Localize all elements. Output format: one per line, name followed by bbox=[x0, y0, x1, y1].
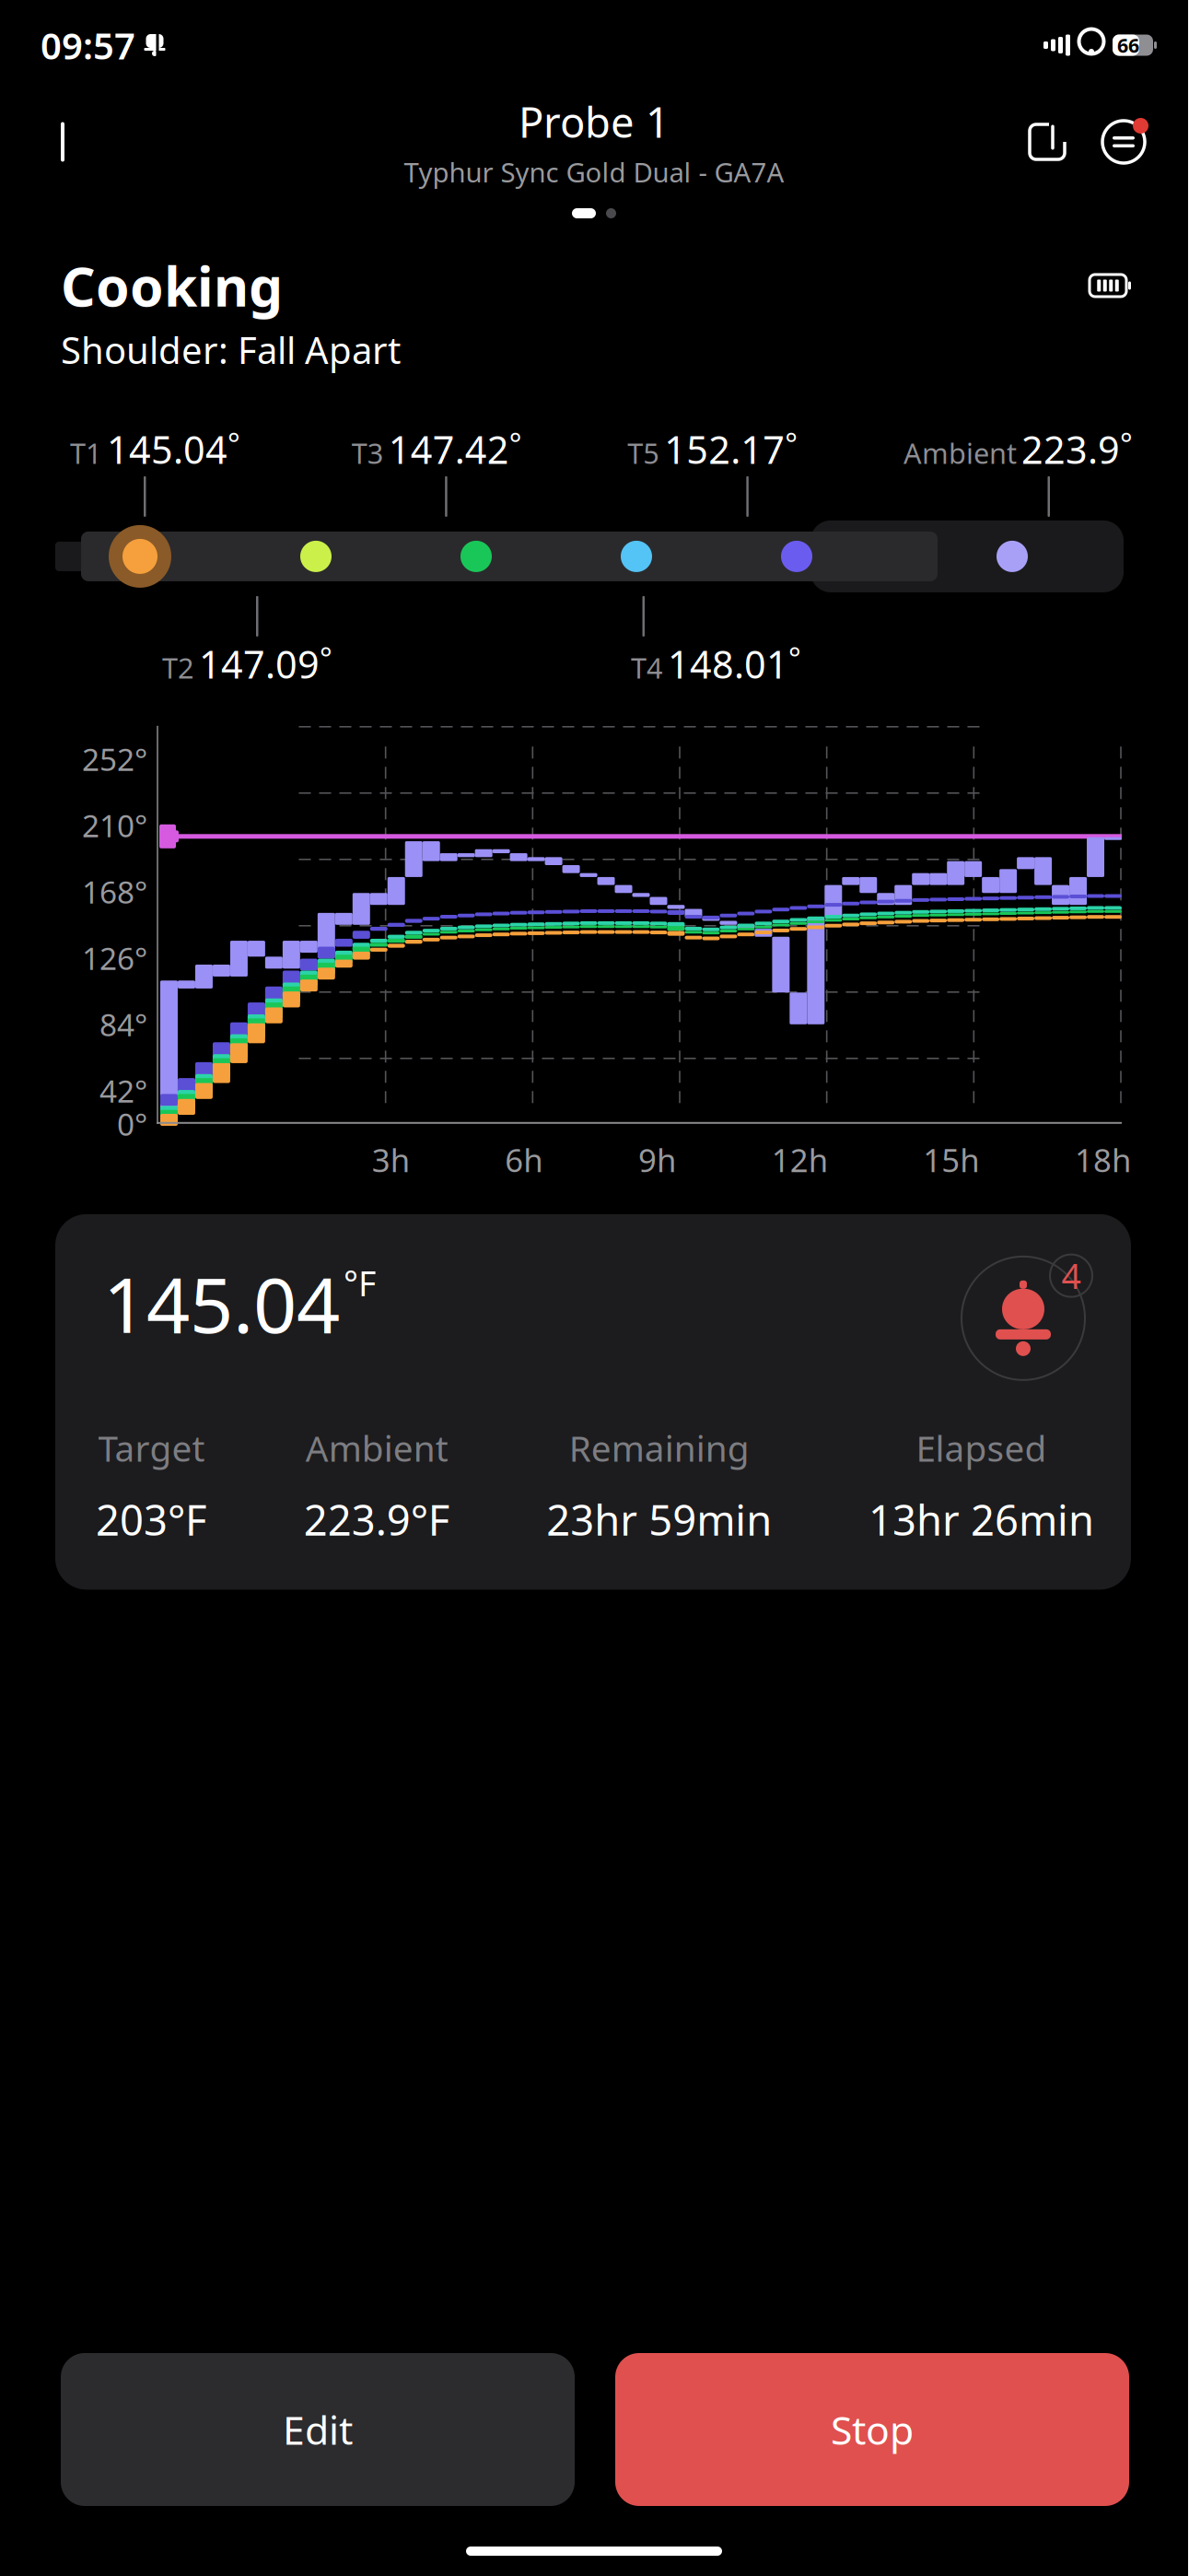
staticText: °F bbox=[344, 1260, 376, 1306]
staticText: 147.42 bbox=[388, 424, 509, 474]
staticText: ° bbox=[227, 424, 240, 463]
staticText: T3 bbox=[352, 434, 384, 472]
button[interactable]: Edit bbox=[61, 2353, 575, 2506]
staticText: Elapsed bbox=[916, 1424, 1047, 1471]
staticText: 15h bbox=[923, 1139, 979, 1181]
staticText: ° bbox=[509, 424, 522, 463]
staticText: Typhur Sync Gold Dual - GA7A bbox=[404, 154, 784, 190]
staticText: 145.04 bbox=[107, 424, 227, 474]
button[interactable]: Switch device bbox=[1092, 111, 1155, 173]
button[interactable]: Back bbox=[33, 112, 92, 171]
staticText: Cooking bbox=[61, 250, 283, 321]
staticText: T2 bbox=[162, 649, 194, 686]
staticText: 12h bbox=[772, 1139, 828, 1181]
staticText: 23hr 59min bbox=[546, 1492, 772, 1547]
staticText: Ambient bbox=[903, 434, 1017, 472]
staticText: 13hr 26min bbox=[868, 1492, 1094, 1547]
staticText: 252° bbox=[82, 739, 147, 779]
staticText: 09:57 bbox=[41, 21, 135, 70]
staticText: 147.09 bbox=[199, 638, 320, 689]
staticText: 9h bbox=[638, 1139, 676, 1181]
staticText: Target bbox=[98, 1424, 205, 1471]
staticText: 210° bbox=[82, 805, 147, 846]
staticText: 66 bbox=[1117, 32, 1139, 58]
staticText: 84° bbox=[99, 1004, 147, 1045]
staticText: 18h bbox=[1075, 1139, 1131, 1181]
staticText: 3h bbox=[372, 1139, 410, 1181]
staticText: 4 bbox=[1061, 1253, 1081, 1299]
button[interactable]: Alarms, 4 set bbox=[954, 1253, 1092, 1384]
staticText: Stop bbox=[831, 2403, 914, 2456]
staticText: 152.17 bbox=[664, 424, 785, 474]
staticText: ° bbox=[320, 638, 332, 678]
staticText: T4 bbox=[631, 649, 663, 686]
staticText: 145.04 bbox=[103, 1253, 340, 1354]
staticText: Shoulder: Fall Apart bbox=[61, 325, 401, 374]
staticText: ° bbox=[785, 424, 798, 463]
staticText: ° bbox=[1120, 424, 1133, 463]
staticText: Probe 1 bbox=[519, 94, 670, 149]
staticText: ° bbox=[788, 638, 801, 678]
staticText: T5 bbox=[627, 434, 660, 472]
button[interactable]: Edit bbox=[1019, 113, 1076, 170]
staticText: T1 bbox=[70, 434, 102, 472]
staticText: 223.9°F bbox=[304, 1492, 450, 1547]
staticText: 203°F bbox=[96, 1492, 207, 1547]
staticText: 148.01 bbox=[668, 638, 788, 689]
staticText: 6h bbox=[505, 1139, 543, 1181]
staticText: 126° bbox=[82, 938, 147, 978]
staticText: Edit bbox=[283, 2403, 353, 2456]
staticText: Remaining bbox=[569, 1424, 750, 1471]
staticText: 42° bbox=[99, 1070, 147, 1111]
staticText: 168° bbox=[82, 871, 147, 912]
staticText: 223.9 bbox=[1021, 424, 1120, 474]
button[interactable]: Stop bbox=[615, 2353, 1129, 2506]
staticText: Ambient bbox=[305, 1424, 448, 1471]
staticText: 0° bbox=[117, 1103, 147, 1144]
